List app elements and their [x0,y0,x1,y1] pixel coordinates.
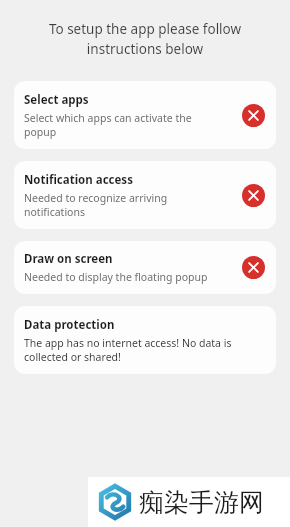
staticText: Select apps [24,92,89,108]
staticText: Needed to recognize arriving notificatio… [24,191,209,219]
button[interactable]: Data protection [14,306,276,374]
staticText: Needed to display the floating popup [24,270,208,284]
staticText: Notification access [24,172,133,188]
button[interactable]: Select apps, not configured [242,104,265,127]
staticText: Draw on screen [24,251,113,267]
button[interactable]: Draw on screen [14,241,276,294]
button[interactable]: Notification access, not granted [242,184,265,207]
button[interactable]: Select apps [14,81,276,149]
staticText: Select which apps can activate the popup [24,111,224,139]
staticText: The app has no internet access! No data … [24,336,254,364]
staticText: To setup the app please follow instructi… [24,20,266,58]
button[interactable]: Draw on screen, not granted [242,256,265,279]
staticText: Data protection [24,317,115,333]
button[interactable]: Notification access [14,161,276,229]
staticText: 痴染手游网 [139,487,264,518]
